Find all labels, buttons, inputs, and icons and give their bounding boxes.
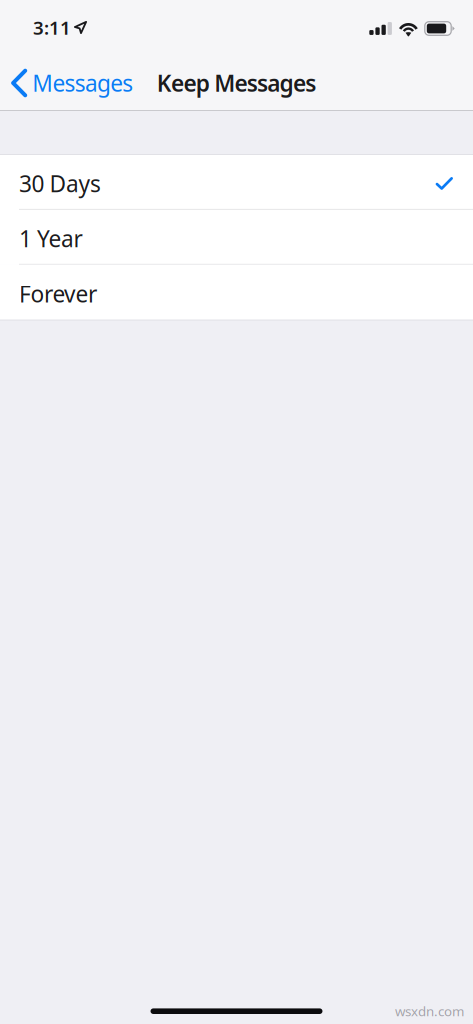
button[interactable]: Forever bbox=[0, 265, 473, 320]
staticText: wsxdn.com bbox=[395, 1002, 464, 1020]
staticText: 1 Year bbox=[19, 223, 82, 253]
staticText: Keep Messages bbox=[157, 68, 316, 98]
staticText: 30 Days bbox=[19, 168, 101, 198]
button[interactable]: 1 Year bbox=[0, 210, 473, 265]
staticText: Messages bbox=[32, 68, 133, 98]
staticText: 3:11 bbox=[33, 15, 71, 40]
button[interactable]: Back to Messages bbox=[0, 55, 143, 111]
staticText: Forever bbox=[19, 279, 97, 309]
button[interactable]: 30 Days bbox=[0, 155, 473, 210]
